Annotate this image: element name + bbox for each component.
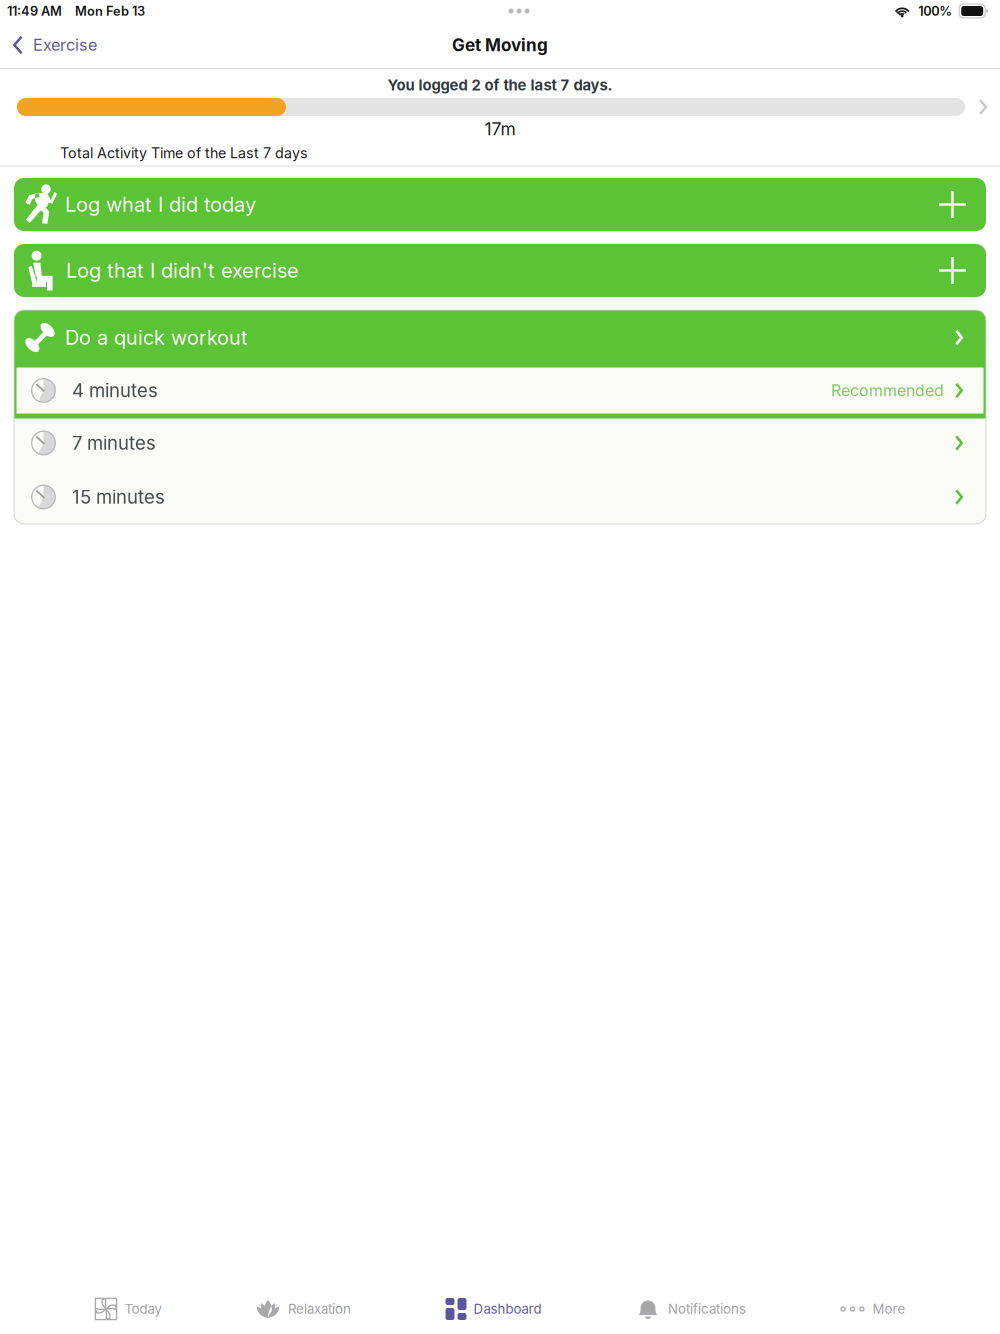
- staticText: 17m: [484, 118, 515, 139]
- button[interactable]: More: [840, 1286, 905, 1332]
- staticText: Today: [124, 1301, 161, 1317]
- button[interactable]: Log that I didn't exercise: [14, 244, 986, 297]
- button[interactable]: You logged 2 of the last 7 days.: [0, 69, 1000, 166]
- staticText: Log what I did today: [65, 192, 256, 217]
- staticText: 11:49 AM: [7, 3, 62, 19]
- staticText: Recommended: [831, 381, 944, 400]
- button[interactable]: Today: [94, 1286, 161, 1332]
- staticText: You logged 2 of the last 7 days.: [387, 76, 612, 94]
- button[interactable]: Do a quick workout: [14, 310, 986, 365]
- staticText: Get Moving: [452, 35, 548, 55]
- staticText: 15 minutes: [72, 486, 165, 508]
- staticText: 4 minutes: [72, 379, 158, 402]
- staticText: Notifications: [668, 1301, 746, 1317]
- button[interactable]: 4 minutes: [14, 365, 986, 416]
- staticText: Relaxation: [288, 1301, 351, 1317]
- staticText: Do a quick workout: [65, 325, 248, 350]
- staticText: Mon Feb 13: [75, 3, 145, 19]
- staticText: 7 minutes: [72, 432, 156, 454]
- staticText: Log that I didn't exercise: [66, 258, 299, 283]
- button[interactable]: Relaxation: [256, 1286, 351, 1332]
- staticText: Dashboard: [473, 1301, 541, 1317]
- staticText: 100%: [918, 3, 952, 19]
- staticText: Total Activity Time of the Last 7 days: [60, 144, 308, 162]
- button[interactable]: Dashboard: [445, 1286, 541, 1332]
- button[interactable]: Notifications: [636, 1286, 746, 1332]
- button[interactable]: 7 minutes: [14, 416, 986, 470]
- button[interactable]: Exercise: [0, 22, 109, 68]
- staticText: More: [872, 1301, 905, 1317]
- button[interactable]: Log what I did today: [14, 178, 986, 231]
- button[interactable]: 15 minutes: [14, 470, 986, 524]
- staticText: Exercise: [33, 35, 97, 55]
